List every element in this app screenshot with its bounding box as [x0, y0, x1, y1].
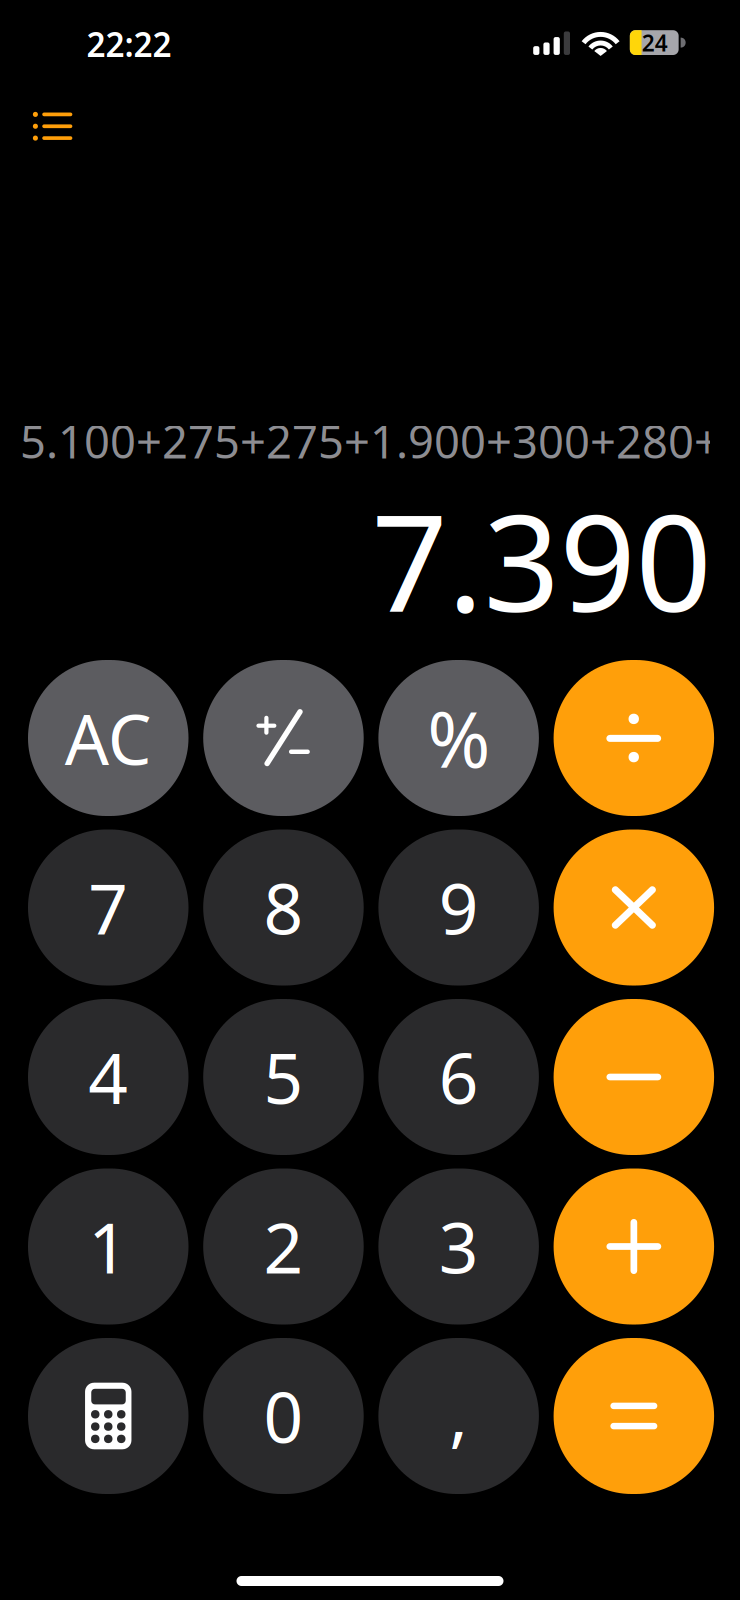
- staticText: 0: [263, 1370, 303, 1462]
- button[interactable]: 3: [378, 1168, 539, 1324]
- button[interactable]: 6: [378, 999, 539, 1155]
- staticText: %: [427, 687, 490, 788]
- staticText: 7: [88, 861, 128, 954]
- button[interactable]: Multiply: [554, 829, 714, 985]
- staticText: 22:22: [86, 22, 171, 66]
- staticText: 5.100+275+275+1.900+300+280+: [20, 411, 720, 471]
- button[interactable]: Plus Minus: [203, 660, 364, 816]
- button[interactable]: 1: [28, 1168, 188, 1324]
- button[interactable]: Equals: [554, 1338, 714, 1494]
- staticText: 4: [88, 1031, 128, 1123]
- staticText: 9: [439, 861, 479, 954]
- staticText: AC: [65, 692, 152, 784]
- staticText: 2: [263, 1200, 303, 1293]
- button[interactable]: History: [2, 84, 103, 169]
- staticText: 7.390: [371, 471, 711, 649]
- button[interactable]: %: [378, 660, 539, 816]
- staticText: 6: [439, 1031, 479, 1123]
- button[interactable]: Calculator: [28, 1338, 188, 1494]
- button[interactable]: ,: [378, 1338, 539, 1494]
- button[interactable]: 9: [378, 829, 539, 985]
- button[interactable]: AC: [28, 660, 188, 816]
- button[interactable]: Divide: [554, 660, 714, 816]
- button[interactable]: Minus: [554, 999, 714, 1155]
- staticText: 8: [263, 861, 303, 954]
- button[interactable]: 0: [203, 1338, 364, 1494]
- staticText: ,: [449, 1367, 468, 1459]
- button[interactable]: 5: [203, 999, 364, 1155]
- staticText: 3: [439, 1200, 479, 1293]
- button[interactable]: Plus: [554, 1168, 714, 1324]
- button[interactable]: 7: [28, 829, 188, 985]
- button[interactable]: 4: [28, 999, 188, 1155]
- staticText: 5: [263, 1031, 303, 1123]
- button[interactable]: 8: [203, 829, 364, 985]
- button[interactable]: 2: [203, 1168, 364, 1324]
- staticText: 24: [642, 27, 668, 58]
- staticText: 1: [88, 1200, 128, 1293]
